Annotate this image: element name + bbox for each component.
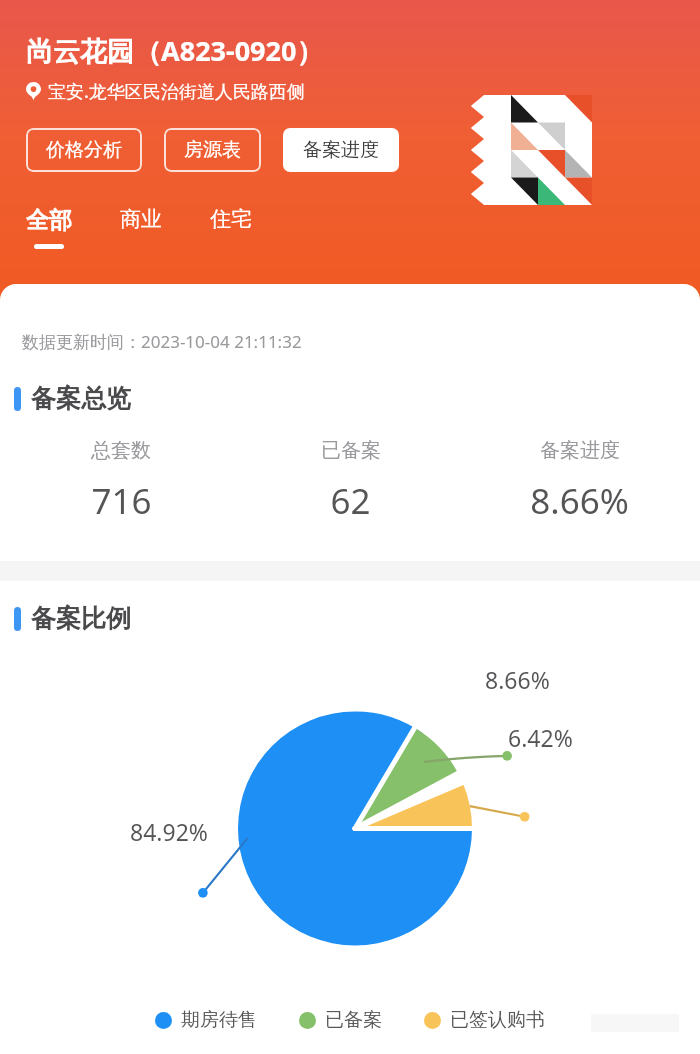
staticText: 8.66% [485,664,550,695]
button[interactable]: 价格分析 [26,128,142,172]
staticText: 住宅 [210,206,252,232]
staticText: 总套数 [91,438,151,463]
staticText: 8.66% [530,477,629,525]
staticText: 期房待售 [181,1008,257,1032]
staticText: 84.92% [130,816,208,847]
staticText: 已签认购书 [450,1008,545,1032]
staticText: 房源表 [184,138,241,162]
button[interactable]: 商业 [120,206,162,246]
staticText: 全部 [26,206,72,235]
staticText: 6.42% [508,722,573,753]
button[interactable]: 全部 [26,206,72,249]
staticText: 备案进度 [303,138,379,162]
staticText: 数据更新时间：2023-10-04 21:11:32 [22,330,302,353]
staticText: 价格分析 [46,138,122,162]
staticText: 已备案 [325,1008,382,1032]
staticText: 62 [330,477,371,525]
staticText: 已备案 [321,438,381,463]
staticText: 宝安.龙华区民治街道人民路西侧 [48,79,305,104]
button[interactable]: 住宅 [210,206,252,246]
button[interactable]: 房源表 [164,128,261,172]
button[interactable]: 备案进度 [283,128,399,172]
staticText: 716 [91,477,152,525]
staticText: 备案比例 [31,603,131,634]
staticText: 商业 [120,206,162,232]
staticText: 备案进度 [540,438,620,463]
staticText: 尚云花园（A823-0920） [26,32,324,69]
staticText: 备案总览 [31,383,131,414]
